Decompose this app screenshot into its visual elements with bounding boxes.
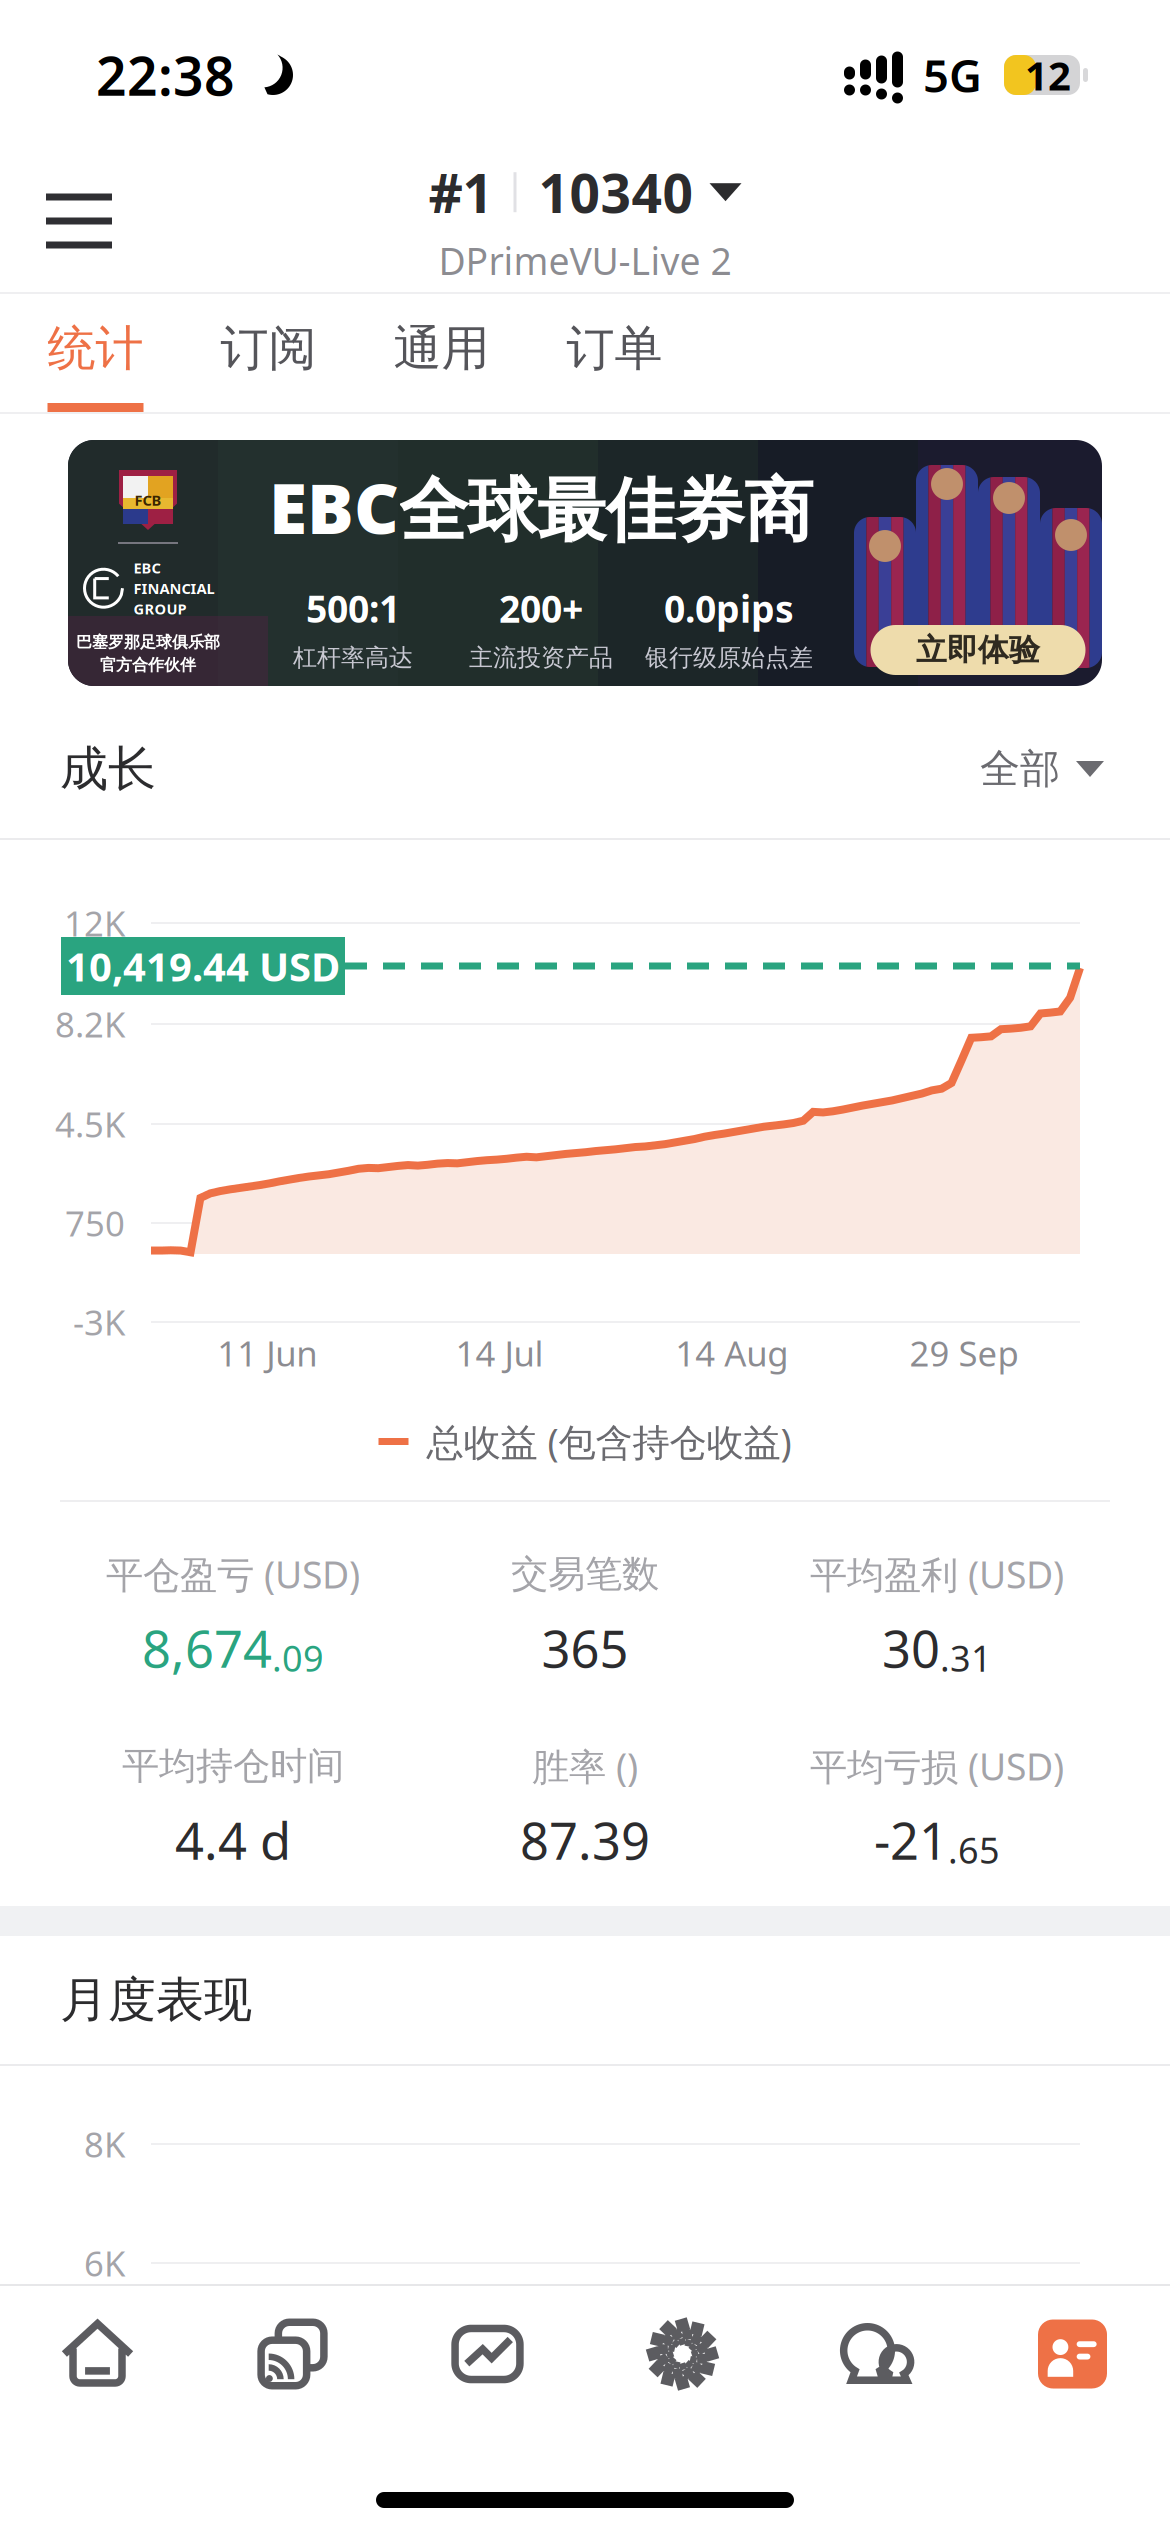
staticText: -3K bbox=[73, 1299, 125, 1345]
staticText: 平均盈利 (USD) bbox=[810, 1549, 1064, 1599]
staticText: 10,419.44 USD bbox=[66, 939, 340, 992]
staticText: 官方合作伙伴 bbox=[100, 655, 196, 675]
staticText: 12 bbox=[1025, 48, 1071, 101]
staticText: 成长 bbox=[60, 739, 156, 798]
staticText: 平仓盈亏 (USD) bbox=[106, 1549, 360, 1599]
staticText: 12K bbox=[64, 900, 125, 946]
button[interactable]: 订单 bbox=[528, 294, 701, 412]
staticText: 29 Sep bbox=[909, 1330, 1018, 1376]
staticText: EBC bbox=[133, 558, 160, 577]
staticText: 订阅 bbox=[220, 319, 316, 378]
staticText: 14 Jul bbox=[455, 1330, 543, 1376]
staticText: FINANCIAL bbox=[133, 578, 214, 598]
staticText: 胜率 () bbox=[532, 1741, 638, 1791]
staticText: 8,674 bbox=[142, 1614, 272, 1682]
staticText: 订单 bbox=[566, 319, 662, 378]
staticText: DPrimeVU-Live 2 bbox=[438, 236, 731, 285]
button[interactable]: Feed bbox=[195, 2286, 390, 2422]
staticText: 8.2K bbox=[55, 1001, 125, 1047]
staticText: 巴塞罗那足球俱乐部 bbox=[76, 632, 220, 652]
button[interactable]: 订阅 bbox=[182, 294, 355, 412]
staticText: 主流投资产品 bbox=[469, 643, 613, 672]
button[interactable]: EBC promotion bbox=[0, 414, 1170, 700]
staticText: 500:1 bbox=[306, 583, 400, 633]
button[interactable]: Discover bbox=[585, 2286, 780, 2422]
staticText: 全部 bbox=[980, 744, 1060, 793]
staticText: 0.0pips bbox=[664, 583, 794, 633]
staticText: -21 bbox=[874, 1806, 948, 1874]
staticText: 6K bbox=[84, 2240, 125, 2286]
staticText: 14 Aug bbox=[675, 1330, 788, 1376]
staticText: 月度表现 bbox=[60, 1970, 252, 2029]
button[interactable]: Home bbox=[0, 2286, 195, 2422]
staticText: FCB bbox=[134, 490, 161, 510]
staticText: 365 bbox=[541, 1614, 628, 1682]
staticText: #1 bbox=[428, 157, 493, 228]
staticText: 5G bbox=[923, 45, 982, 105]
staticText: 平均持仓时间 bbox=[122, 1743, 344, 1789]
staticText: 总收益 (包含持仓收益) bbox=[426, 1417, 791, 1466]
staticText: 87.39 bbox=[520, 1806, 650, 1874]
staticText: 平均亏损 (USD) bbox=[810, 1741, 1064, 1791]
staticText: 银行级原始点差 bbox=[645, 643, 813, 672]
staticText: .09 bbox=[272, 1634, 324, 1682]
button[interactable]: Menu bbox=[24, 166, 134, 276]
staticText: 10340 bbox=[538, 157, 693, 228]
staticText: 8K bbox=[84, 2121, 125, 2167]
staticText: 200+ bbox=[499, 583, 583, 633]
staticText: 4.4 d bbox=[175, 1806, 291, 1874]
button[interactable]: 全部 bbox=[980, 744, 1104, 793]
staticText: 杠杆率高达 bbox=[293, 643, 413, 672]
staticText: 4.5K bbox=[55, 1101, 125, 1147]
staticText: 通用 bbox=[393, 319, 489, 378]
staticText: .65 bbox=[948, 1826, 1000, 1874]
button[interactable]: Messages bbox=[780, 2286, 975, 2422]
button[interactable]: 通用 bbox=[355, 294, 528, 412]
staticText: 统计 bbox=[47, 319, 143, 378]
staticText: GROUP bbox=[133, 599, 186, 618]
button[interactable]: 统计 bbox=[9, 294, 182, 412]
staticText: 750 bbox=[65, 1200, 125, 1246]
staticText: 30 bbox=[882, 1614, 940, 1682]
staticText: EBC全球最佳券商 bbox=[269, 461, 813, 553]
button[interactable]: Account bbox=[975, 2286, 1170, 2422]
button[interactable]: Charts bbox=[390, 2286, 585, 2422]
staticText: 立即体验 bbox=[916, 631, 1040, 669]
staticText: .31 bbox=[940, 1634, 992, 1682]
staticText: 交易笔数 bbox=[511, 1551, 659, 1597]
staticText: 11 Jun bbox=[217, 1330, 317, 1376]
staticText: 22:38 bbox=[96, 40, 235, 110]
